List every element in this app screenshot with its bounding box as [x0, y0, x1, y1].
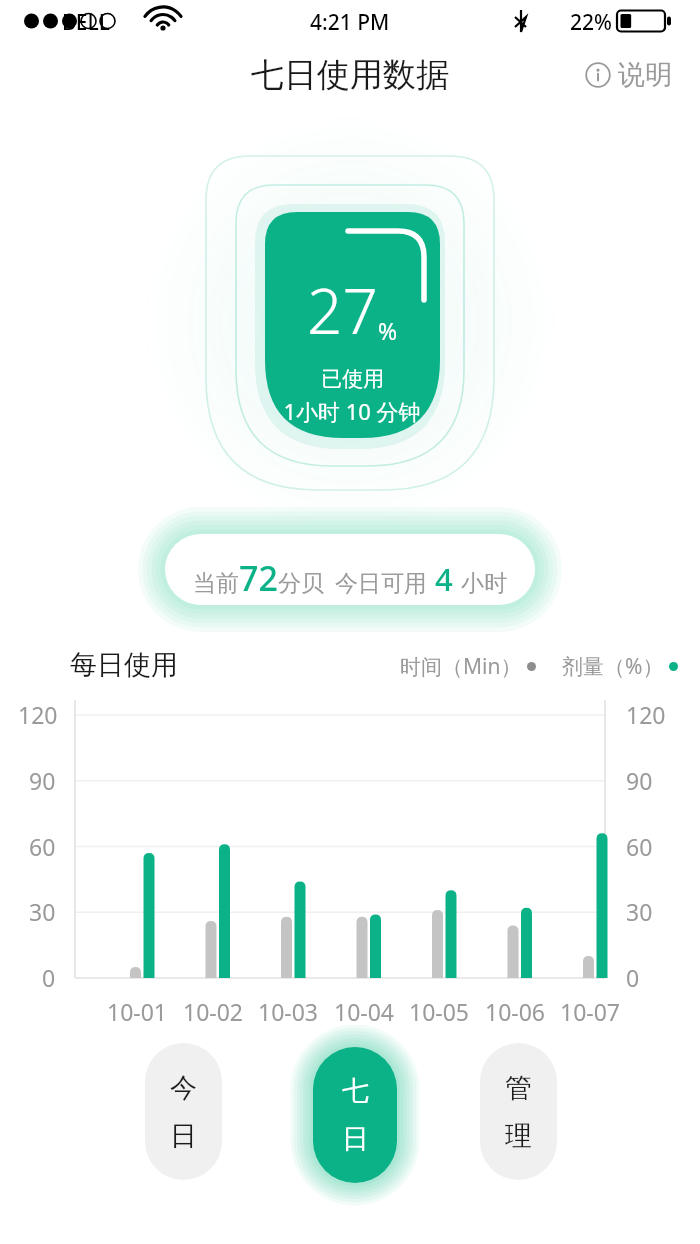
staticText: 120 [626, 699, 666, 730]
button[interactable]: 今 [145, 1043, 222, 1180]
staticText: 0 [626, 962, 640, 993]
staticText: 今 [170, 1071, 197, 1105]
staticText: 每日使用 [70, 648, 178, 682]
staticText: % [378, 315, 398, 346]
staticText: 10-03 [258, 996, 319, 1027]
staticText: 72 [239, 555, 278, 601]
staticText: 当前 [193, 569, 239, 598]
staticText: 管 [505, 1071, 532, 1105]
staticText: 120 [18, 699, 58, 730]
staticText: 0 [42, 962, 56, 993]
staticText: 10-01 [107, 996, 168, 1027]
staticText: BELL [62, 8, 110, 37]
staticText: 1小时 10 分钟 [283, 396, 421, 426]
staticText: 4:21 PM [310, 8, 390, 37]
staticText: 小时 [461, 569, 507, 598]
staticText: 说明 [618, 58, 672, 92]
staticText: 30 [29, 896, 56, 927]
staticText: 60 [626, 831, 653, 862]
staticText: 已使用 [321, 366, 384, 392]
staticText: 分贝 [278, 569, 324, 598]
staticText: 日 [170, 1119, 197, 1153]
button[interactable]: 说明 [579, 52, 678, 98]
staticText: 七 [342, 1074, 369, 1108]
staticText: 10-05 [409, 996, 470, 1027]
staticText: 10-04 [334, 996, 395, 1027]
staticText: 30 [626, 896, 653, 927]
staticText: 10-07 [560, 996, 621, 1027]
staticText: 今日可用 [335, 569, 427, 598]
button[interactable]: 管 [480, 1043, 557, 1180]
staticText: 七日使用数据 [251, 54, 449, 96]
staticText: 27 [307, 268, 378, 352]
staticText: 剂量（%） [562, 652, 664, 681]
staticText: 4 [435, 558, 453, 600]
staticText: 理 [505, 1119, 532, 1153]
staticText: 60 [29, 831, 56, 862]
button[interactable]: 七 [313, 1047, 397, 1183]
staticText: 日 [342, 1122, 369, 1156]
staticText: 10-02 [183, 996, 244, 1027]
staticText: 90 [29, 765, 56, 796]
staticText: 10-06 [485, 996, 546, 1027]
staticText: 22% [570, 8, 612, 37]
staticText: 90 [626, 765, 653, 796]
staticText: 时间（Min） [400, 652, 522, 681]
